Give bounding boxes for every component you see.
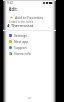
staticText: Support bbox=[14, 45, 27, 50]
staticText: Edit bbox=[9, 6, 18, 12]
staticText: Home info bbox=[14, 51, 31, 56]
button[interactable]: Home info bbox=[3, 50, 56, 56]
button[interactable]: Support bbox=[3, 44, 56, 50]
staticText: Nest app bbox=[14, 39, 29, 44]
staticText: Thermostat bbox=[11, 23, 34, 28]
button[interactable]: Nest app bbox=[3, 38, 56, 44]
staticText: Linked to this home bbox=[9, 20, 34, 24]
button[interactable]: Settings bbox=[3, 32, 56, 38]
staticText: Add to Favorites bbox=[15, 15, 44, 20]
button[interactable]: Back bbox=[7, 6, 13, 12]
staticText: 9:41 bbox=[7, 1, 14, 5]
button[interactable]: Thermostat bbox=[3, 23, 56, 28]
staticText: Settings bbox=[14, 33, 27, 38]
button[interactable]: Add to Favorites bbox=[3, 14, 56, 20]
